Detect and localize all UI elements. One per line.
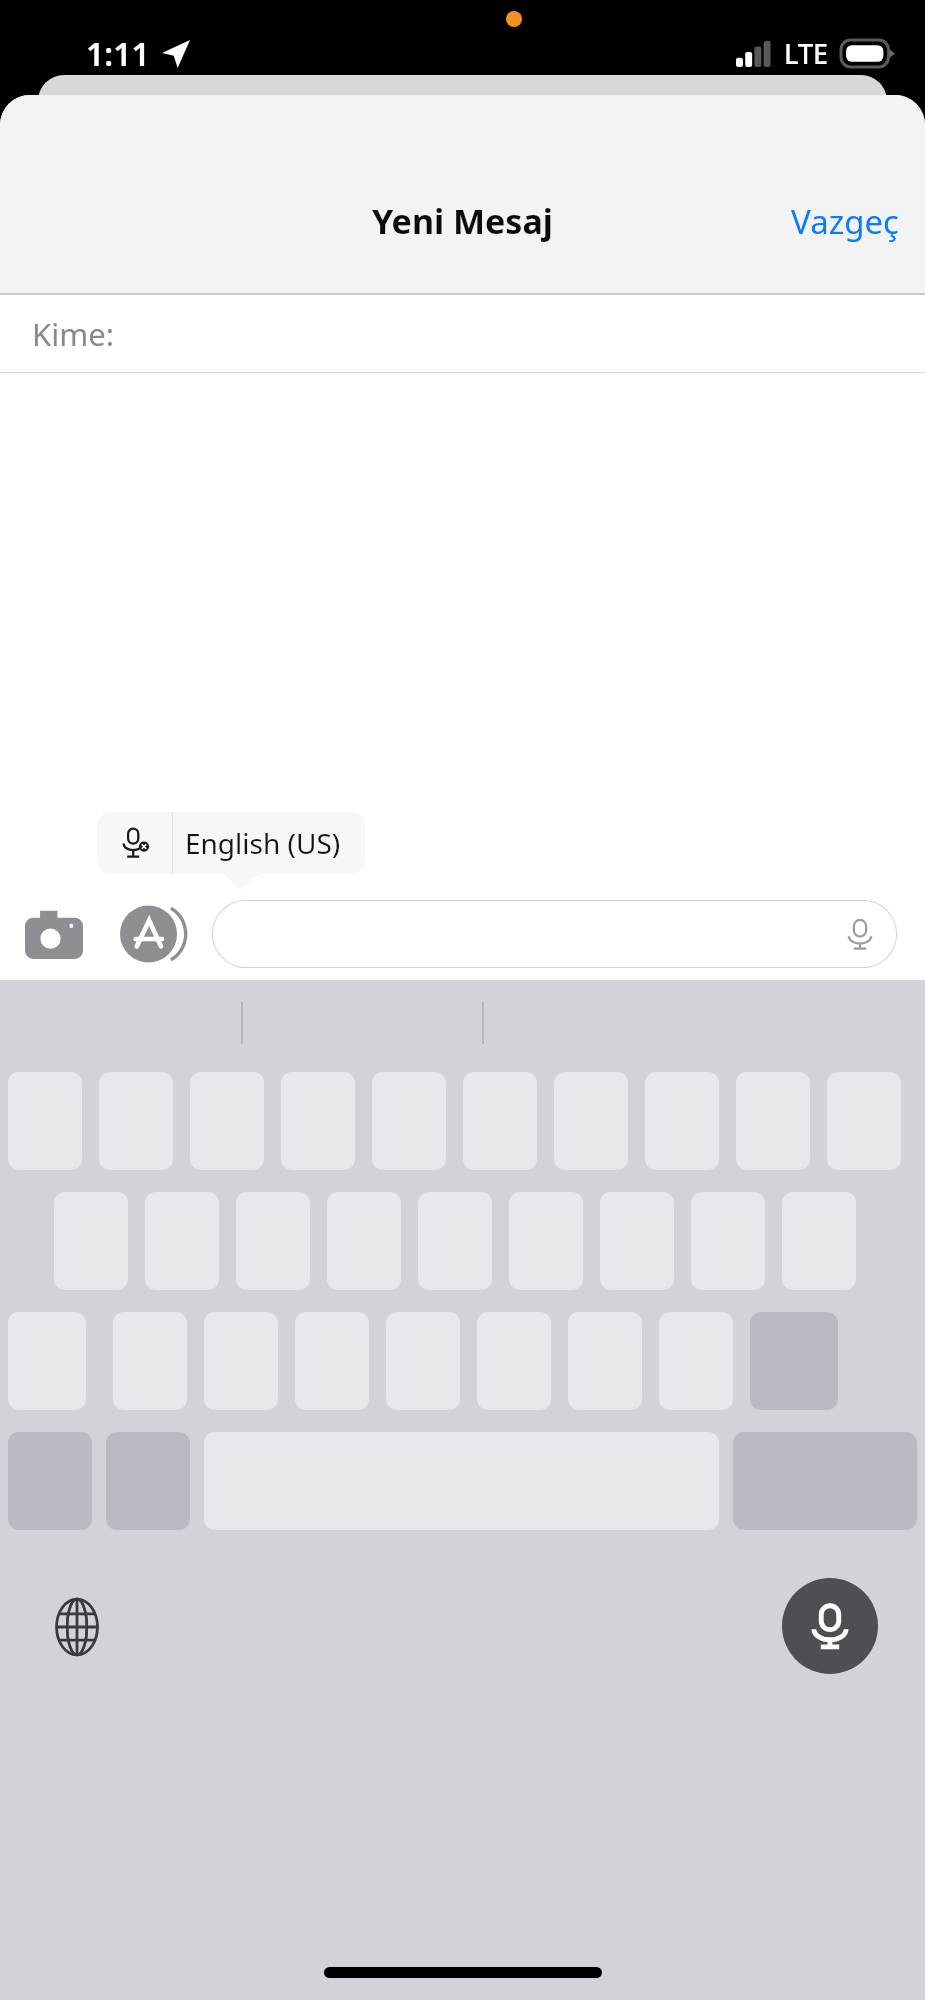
button[interactable]: Vazgeç <box>765 185 925 258</box>
staticText: Yeni Mesaj <box>372 198 553 244</box>
button[interactable] <box>97 812 365 874</box>
button[interactable]: Change keyboard <box>42 1592 112 1662</box>
other: Dictation off <box>97 812 172 874</box>
other: Dictate <box>843 917 877 951</box>
button[interactable]: Apps <box>120 903 182 965</box>
button[interactable]: Camera <box>24 904 84 964</box>
staticText: English (US) <box>185 824 341 862</box>
staticText: Vazgeç <box>791 199 899 244</box>
staticText: LTE <box>784 35 829 72</box>
staticText: Kime: <box>32 313 114 355</box>
button[interactable]: Dictate <box>212 900 897 968</box>
staticText: 1:11 <box>86 32 150 76</box>
button[interactable]: Dictation <box>782 1578 878 1674</box>
button[interactable]: Kime: <box>0 295 925 373</box>
